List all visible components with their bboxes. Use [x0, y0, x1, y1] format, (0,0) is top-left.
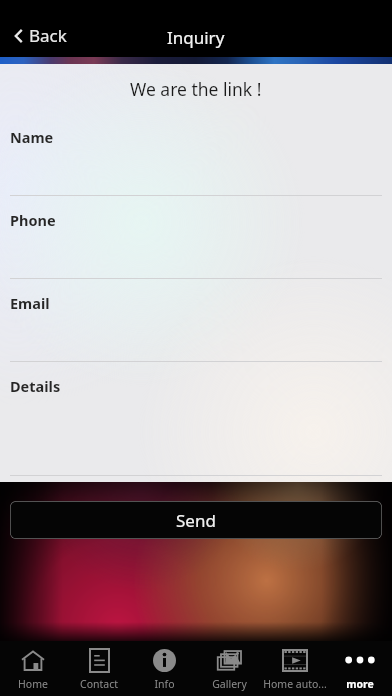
- button[interactable]: Gallery: [197, 641, 262, 696]
- staticText: Details: [10, 376, 61, 396]
- button[interactable]: Home auto...: [262, 641, 327, 696]
- staticText: more: [346, 677, 374, 691]
- button[interactable]: Email: [0, 279, 392, 362]
- staticText: Inquiry: [167, 26, 225, 49]
- staticText: Home auto...: [263, 677, 327, 691]
- staticText: Send: [176, 509, 216, 532]
- button[interactable]: more: [327, 641, 392, 696]
- button[interactable]: Send: [10, 501, 382, 539]
- staticText: Gallery: [212, 677, 247, 691]
- button[interactable]: Name: [0, 113, 392, 196]
- staticText: Name: [10, 127, 54, 147]
- button[interactable]: Details: [0, 362, 392, 476]
- staticText: Info: [154, 677, 175, 691]
- staticText: Contact: [80, 677, 118, 691]
- staticText: Back: [29, 24, 67, 47]
- button[interactable]: Contact: [66, 641, 132, 696]
- staticText: Phone: [10, 210, 56, 230]
- button[interactable]: Home: [0, 641, 66, 696]
- button[interactable]: Info: [132, 641, 197, 696]
- button[interactable]: Phone: [0, 196, 392, 279]
- staticText: Home: [18, 677, 48, 691]
- button[interactable]: Back: [10, 22, 71, 49]
- staticText: Email: [10, 293, 50, 313]
- staticText: We are the link !: [130, 77, 262, 101]
